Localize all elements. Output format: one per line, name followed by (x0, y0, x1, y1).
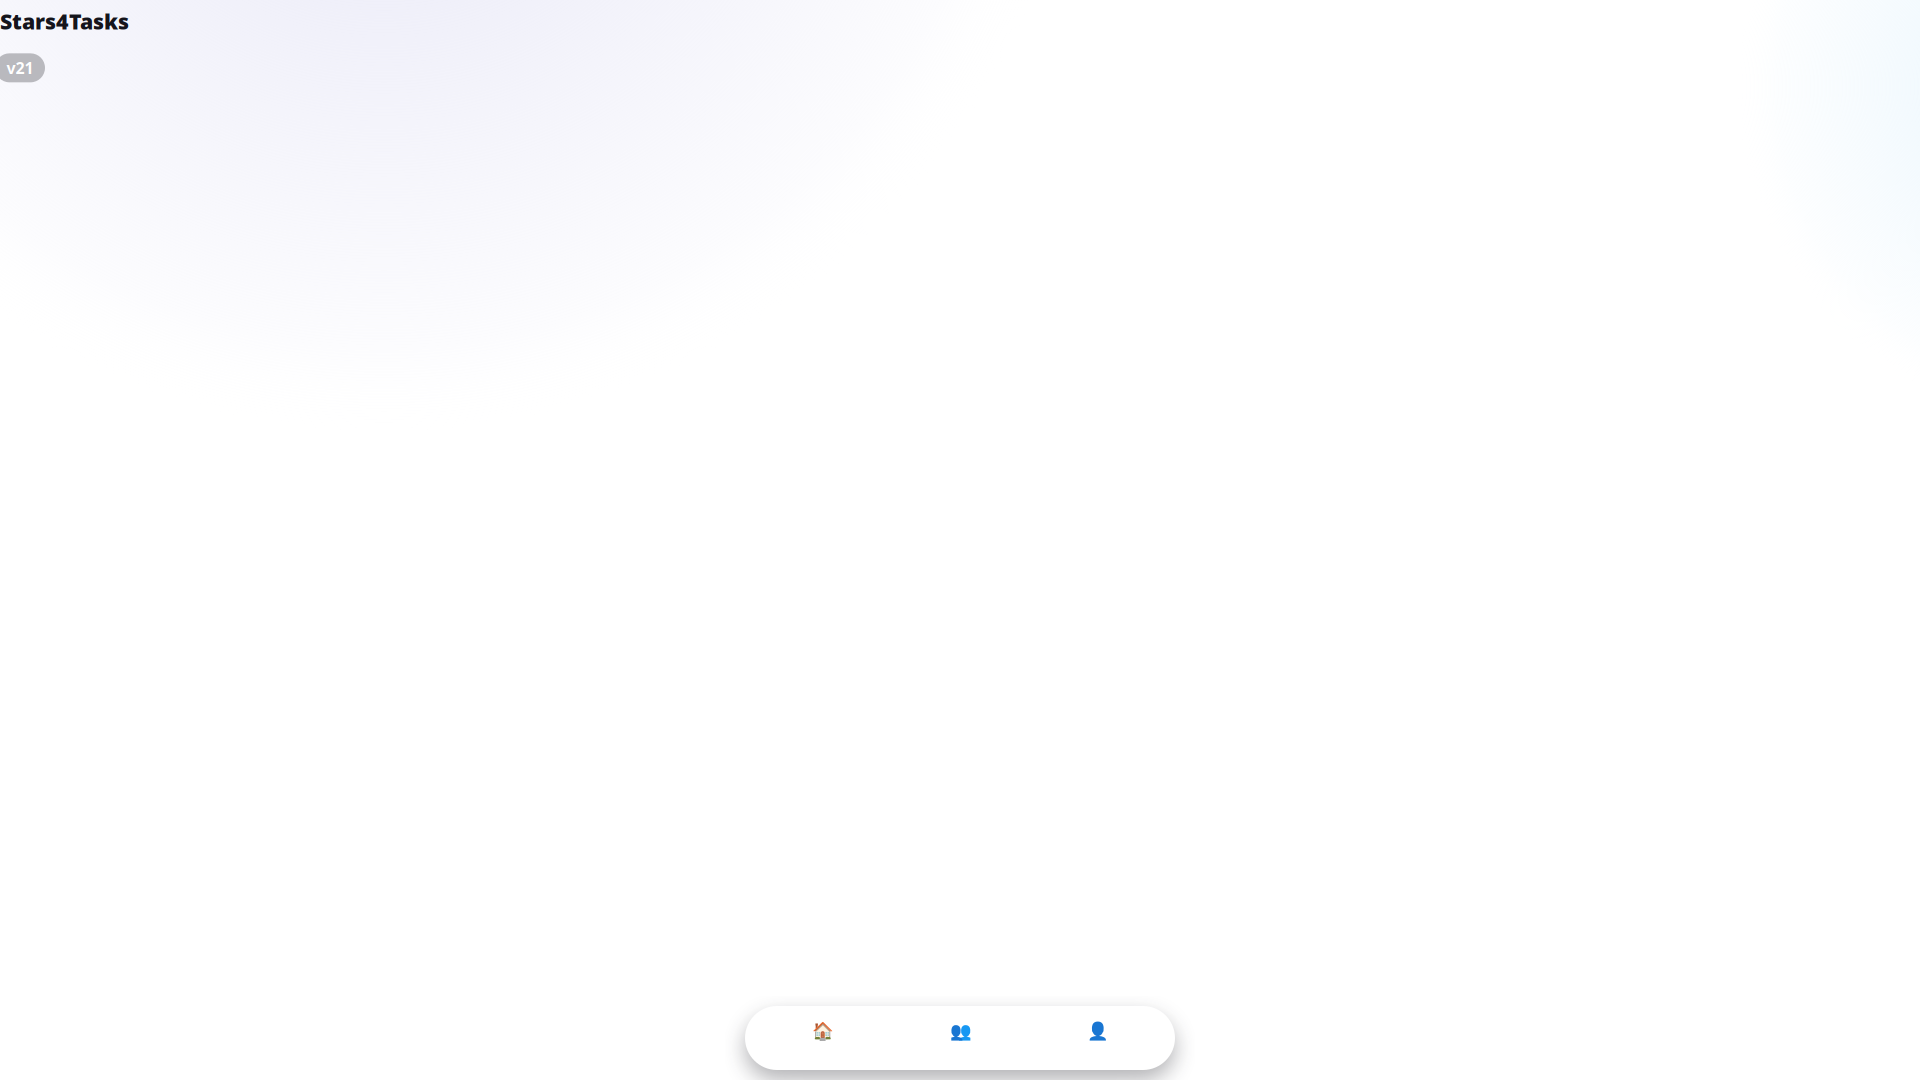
button[interactable]: Profile (1021, 1006, 1175, 1070)
button[interactable]: Home (745, 1006, 901, 1070)
staticText: 👤 (1087, 1022, 1109, 1041)
staticText: 🏠 (812, 1022, 834, 1041)
button[interactable]: Family (901, 1006, 1021, 1070)
staticText: Stars4Tasks (0, 7, 129, 35)
staticText: v21 (6, 57, 33, 78)
staticText: 👥 (950, 1022, 972, 1041)
